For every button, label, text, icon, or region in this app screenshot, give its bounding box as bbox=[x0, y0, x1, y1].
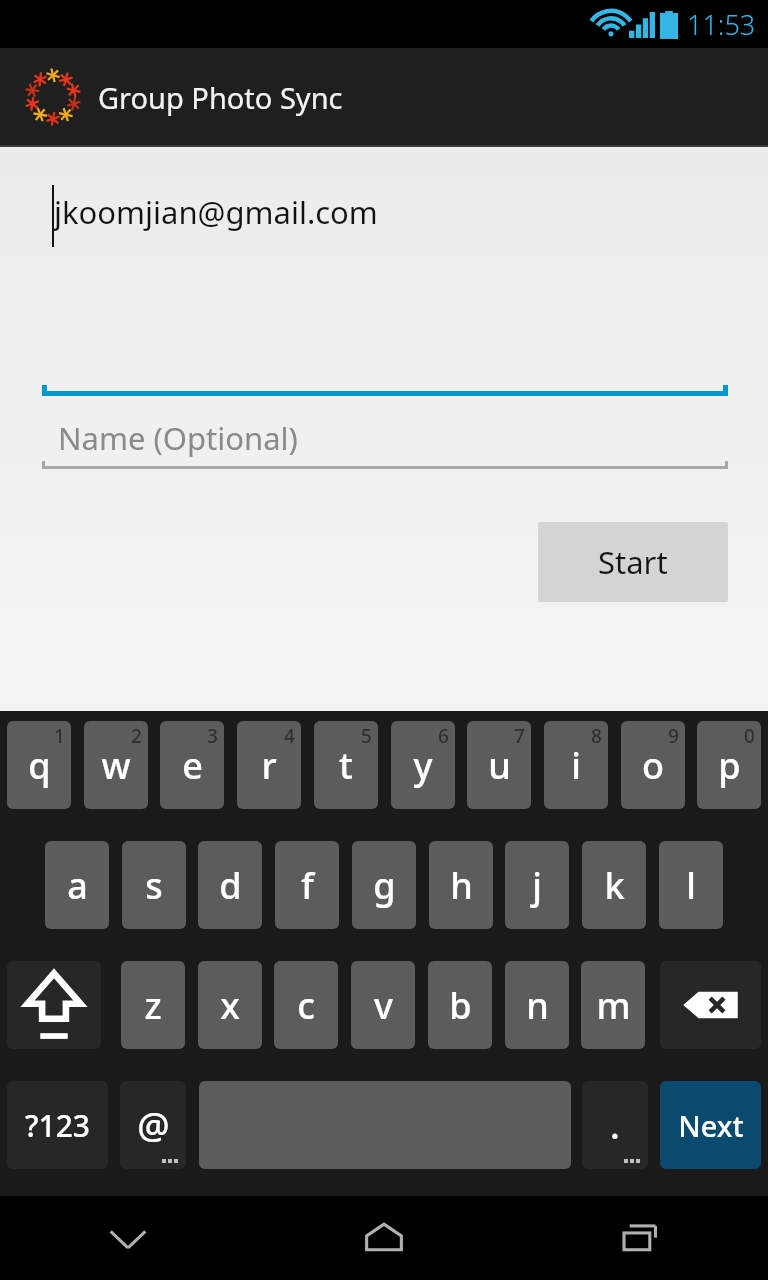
staticText: g bbox=[373, 861, 396, 910]
staticText: 6 bbox=[438, 723, 449, 749]
staticText: 4 bbox=[284, 723, 295, 749]
button[interactable]: z bbox=[121, 961, 185, 1049]
staticText: t bbox=[339, 741, 353, 790]
staticText: Group Photo Sync bbox=[98, 78, 343, 117]
staticText: c bbox=[297, 981, 315, 1030]
button[interactable]: g bbox=[352, 841, 416, 929]
staticText: Next bbox=[678, 1106, 744, 1145]
button[interactable]: t bbox=[314, 721, 378, 809]
staticText: b bbox=[449, 981, 472, 1030]
button[interactable]: Shift bbox=[7, 961, 101, 1049]
button[interactable]: Hide keyboard bbox=[0, 1196, 256, 1280]
staticText: m bbox=[596, 981, 631, 1030]
button[interactable]: w bbox=[84, 721, 148, 809]
staticText: 5 bbox=[361, 723, 372, 749]
button[interactable]: Home bbox=[256, 1196, 512, 1280]
staticText: p bbox=[718, 741, 741, 790]
staticText: l bbox=[686, 861, 696, 910]
staticText: 1 bbox=[54, 723, 65, 749]
staticText: f bbox=[301, 861, 314, 910]
staticText: Name (Optional) bbox=[58, 417, 298, 459]
staticText: . bbox=[610, 1101, 620, 1150]
staticText: s bbox=[145, 861, 163, 910]
staticText: y bbox=[413, 741, 433, 790]
button[interactable]: Start bbox=[538, 522, 728, 602]
staticText: w bbox=[101, 741, 131, 790]
button[interactable]: . bbox=[582, 1081, 648, 1169]
staticText: 0 bbox=[744, 723, 755, 749]
button[interactable]: Recents bbox=[512, 1196, 768, 1280]
staticText: Start bbox=[598, 541, 668, 583]
button[interactable]: a bbox=[45, 841, 109, 929]
button[interactable]: l bbox=[659, 841, 723, 929]
staticText: n bbox=[526, 981, 549, 1030]
staticText: a bbox=[67, 861, 88, 910]
staticText: @ bbox=[137, 1101, 170, 1150]
button[interactable]: k bbox=[582, 841, 646, 929]
button[interactable]: n bbox=[505, 961, 569, 1049]
button[interactable]: h bbox=[429, 841, 493, 929]
button[interactable]: m bbox=[581, 961, 645, 1049]
staticText: i bbox=[571, 741, 581, 790]
staticText: k bbox=[604, 861, 625, 910]
button[interactable]: Name (Optional) bbox=[42, 415, 728, 473]
button[interactable]: i bbox=[544, 721, 608, 809]
staticText: 3 bbox=[207, 723, 218, 749]
button[interactable]: o bbox=[621, 721, 685, 809]
button[interactable]: y bbox=[391, 721, 455, 809]
button[interactable]: Next bbox=[660, 1081, 761, 1169]
button[interactable]: r bbox=[237, 721, 301, 809]
button[interactable]: s bbox=[122, 841, 186, 929]
button[interactable]: f bbox=[275, 841, 339, 929]
staticText: d bbox=[219, 861, 242, 910]
staticText: 7 bbox=[514, 723, 525, 749]
staticText: u bbox=[488, 741, 511, 790]
staticText: 8 bbox=[591, 723, 602, 749]
button[interactable]: c bbox=[274, 961, 338, 1049]
button[interactable]: d bbox=[198, 841, 262, 929]
staticText: ?123 bbox=[25, 1105, 90, 1146]
button[interactable]: q bbox=[7, 721, 71, 809]
button[interactable]: Backspace bbox=[660, 961, 761, 1049]
staticText: e bbox=[182, 741, 203, 790]
button[interactable]: @ bbox=[120, 1081, 186, 1169]
staticText: j bbox=[532, 861, 542, 910]
staticText: v bbox=[374, 981, 393, 1030]
staticText: q bbox=[28, 741, 51, 790]
button[interactable]: v bbox=[351, 961, 415, 1049]
button[interactable]: e bbox=[160, 721, 224, 809]
button[interactable]: jkoomjian@gmail.com bbox=[42, 189, 728, 253]
button[interactable]: b bbox=[428, 961, 492, 1049]
button[interactable]: p bbox=[697, 721, 761, 809]
staticText: 9 bbox=[668, 723, 679, 749]
button[interactable]: u bbox=[467, 721, 531, 809]
button[interactable]: x bbox=[198, 961, 262, 1049]
staticText: 11:53 bbox=[687, 6, 756, 43]
button[interactable]: j bbox=[505, 841, 569, 929]
staticText: jkoomjian@gmail.com bbox=[54, 191, 378, 233]
staticText: x bbox=[220, 981, 240, 1030]
button[interactable]: ?123 bbox=[7, 1081, 108, 1169]
staticText: 2 bbox=[131, 723, 142, 749]
staticText: r bbox=[261, 741, 277, 790]
staticText: z bbox=[144, 981, 162, 1030]
staticText: h bbox=[450, 861, 473, 910]
staticText: o bbox=[642, 741, 664, 790]
